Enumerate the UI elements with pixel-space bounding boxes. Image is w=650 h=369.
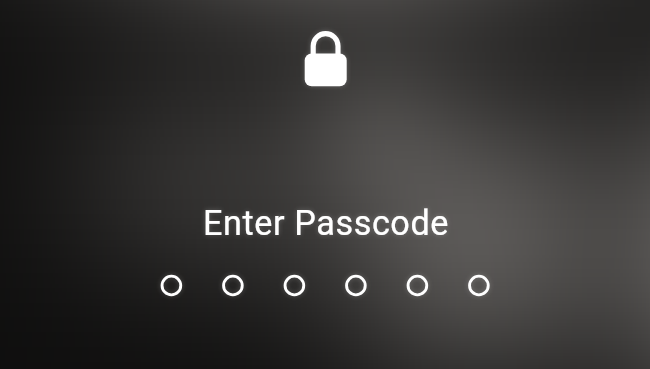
staticText: Enter Passcode (1, 203, 650, 369)
staticText: Enter Passcode (1, 203, 650, 369)
button[interactable]: Passcode entry field (150, 262, 500, 310)
